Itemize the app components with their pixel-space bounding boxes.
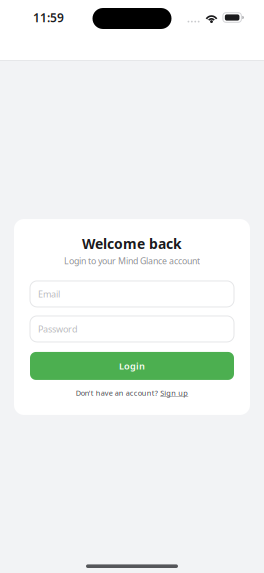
staticText: Email [38,288,60,300]
staticText: Login [119,360,145,372]
staticText: Login to your Mind Glance account [64,255,200,267]
button[interactable]: Login [30,352,234,380]
button[interactable]: Don't have an account? [76,387,188,399]
staticText: Sign up [160,388,188,398]
staticText: Password [38,323,78,335]
staticText: 11:59 [33,9,64,25]
staticText: Don't have an account? [76,388,158,398]
staticText: Welcome back [82,234,182,253]
